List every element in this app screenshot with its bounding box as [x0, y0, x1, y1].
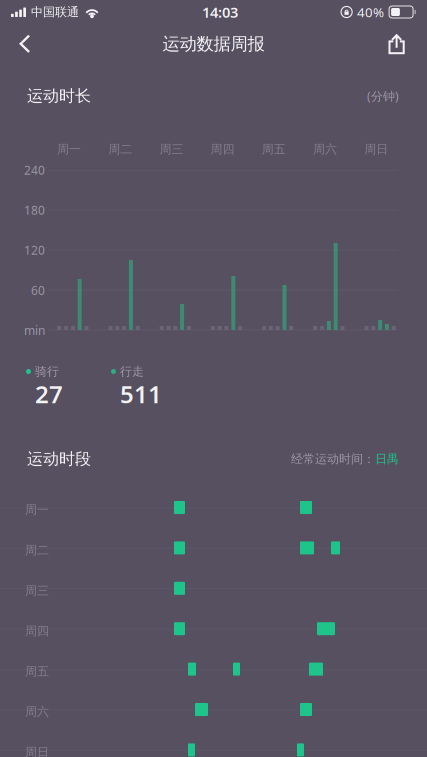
staticText: 运动时段 [27, 449, 91, 469]
staticText: 周四 [211, 142, 235, 157]
button[interactable]: Share [375, 23, 419, 65]
staticText: 周一 [25, 502, 49, 517]
staticText: 周日 [25, 745, 49, 757]
staticText: 周二 [25, 543, 49, 558]
staticText: 240 [24, 162, 45, 178]
staticText: 运动数据周报 [162, 33, 264, 55]
staticText: 60 [31, 282, 45, 298]
staticText: 周日 [364, 142, 388, 157]
staticText: 周一 [57, 142, 81, 157]
staticText: (分钟) [367, 88, 399, 104]
staticText: 周三 [159, 142, 183, 157]
staticText: 14:03 [202, 2, 238, 22]
staticText: 运动时长 [27, 86, 91, 106]
staticText: 180 [24, 202, 45, 218]
staticText: min [24, 322, 45, 338]
staticText: 周六 [313, 142, 337, 157]
staticText: 日禺 [375, 452, 399, 466]
staticText: 周二 [108, 142, 132, 157]
staticText: 中国联通 [31, 5, 79, 19]
staticText: 周五 [262, 142, 286, 157]
staticText: 周六 [25, 704, 49, 719]
staticText: 511 [120, 378, 162, 410]
staticText: 40% [357, 3, 384, 21]
staticText: 周三 [25, 583, 49, 598]
staticText: 周四 [25, 624, 49, 638]
button[interactable]: Back [3, 23, 47, 65]
staticText: 120 [24, 242, 45, 258]
staticText: 骑行 [35, 364, 59, 379]
staticText: 27 [35, 378, 63, 410]
staticText: 周五 [25, 664, 49, 679]
staticText: 经常运动时间： [291, 452, 375, 466]
staticText: 行走 [120, 364, 144, 379]
